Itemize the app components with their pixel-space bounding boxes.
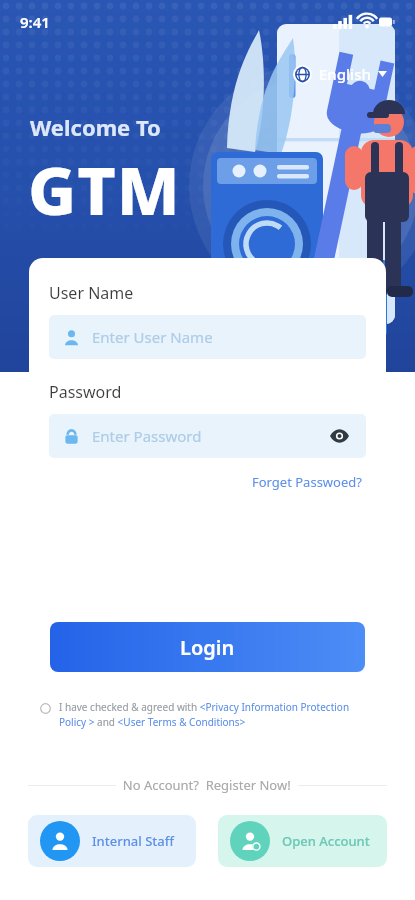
staticText: No Account? Register Now! — [116, 776, 298, 794]
staticText: I have checked & agreed with <Privacy In… — [59, 700, 375, 729]
staticText: Enter User Name — [92, 327, 213, 347]
button[interactable]: Enter Password — [49, 414, 366, 458]
button[interactable]: Forget Passwoed? — [248, 470, 366, 494]
staticText: Enter Password — [92, 426, 202, 446]
staticText: 9:41 — [20, 12, 50, 32]
staticText: Welcome To — [30, 112, 161, 142]
staticText: User Name — [49, 282, 134, 304]
staticText: Open Account — [282, 832, 370, 850]
staticText: GTM — [28, 144, 181, 234]
button[interactable]: Login — [50, 622, 365, 672]
staticText: Login — [180, 634, 235, 661]
button[interactable]: Internal Staff — [28, 815, 196, 867]
staticText: Forget Passwoed? — [252, 473, 362, 491]
button[interactable]: English — [287, 60, 393, 88]
button[interactable]: Enter User Name — [49, 315, 366, 359]
button[interactable]: Open Account — [218, 815, 387, 867]
staticText: English — [319, 64, 371, 84]
staticText: Internal Staff — [92, 832, 175, 850]
button[interactable]: Show password — [326, 423, 352, 449]
button[interactable]: I have checked & agreed with <Privacy In… — [40, 700, 375, 729]
staticText: Password — [49, 381, 122, 403]
